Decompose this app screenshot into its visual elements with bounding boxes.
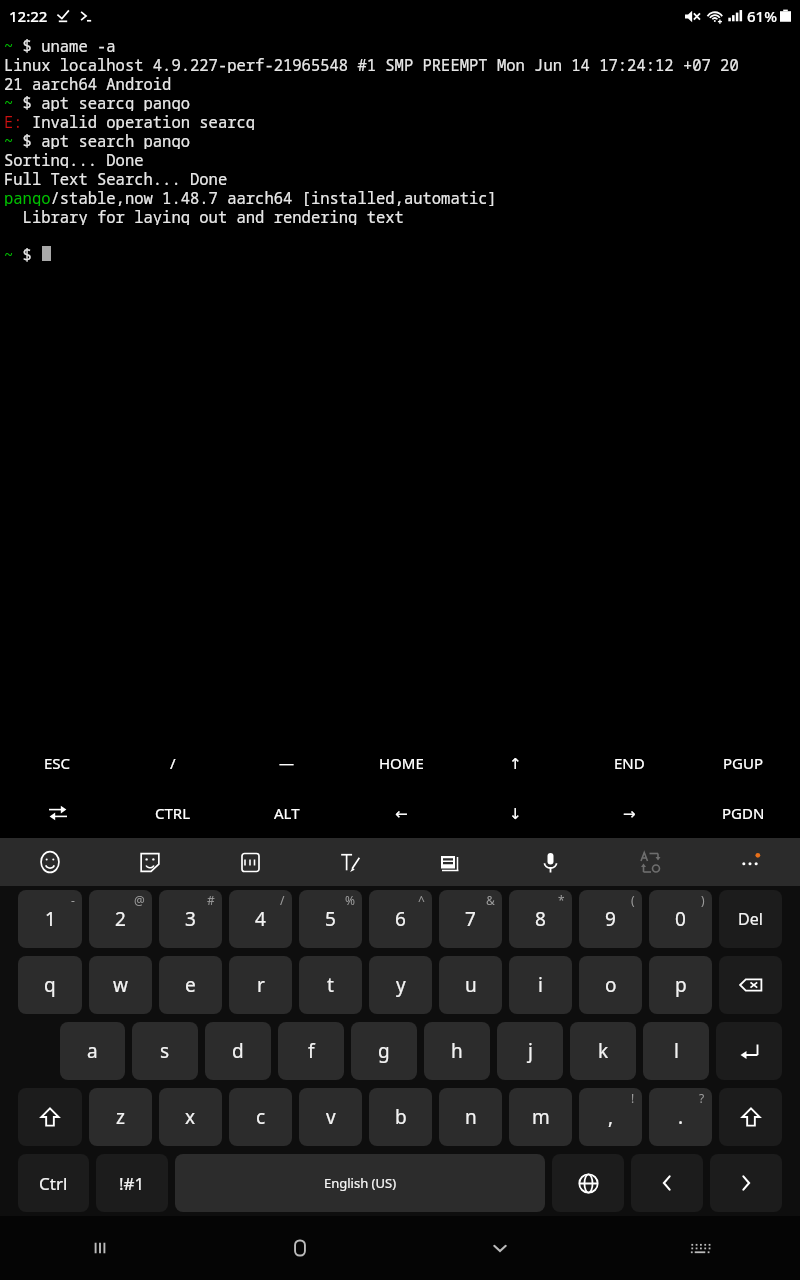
button[interactable]: h xyxy=(424,1022,490,1080)
staticText: Full Text Search... Done xyxy=(4,168,228,187)
button[interactable]: 2 xyxy=(89,890,152,948)
staticText: m xyxy=(532,1104,550,1130)
button[interactable]: Emoji xyxy=(0,838,100,886)
button[interactable]: , xyxy=(579,1088,642,1146)
button[interactable]: END xyxy=(572,738,686,788)
button[interactable]: Shift xyxy=(18,1088,82,1146)
staticText: Linux localhost 4.9.227-perf-21965548 #1… xyxy=(4,54,739,73)
button[interactable]: Shift xyxy=(719,1088,782,1146)
button[interactable]: o xyxy=(579,956,642,1014)
button[interactable]: z xyxy=(89,1088,152,1146)
staticText: * xyxy=(558,892,565,908)
button[interactable]: Tab xyxy=(0,788,115,838)
button[interactable]: / xyxy=(115,738,230,788)
button[interactable]: ← xyxy=(344,788,458,838)
button[interactable]: English (US) xyxy=(175,1154,545,1212)
button[interactable]: . xyxy=(649,1088,712,1146)
staticText: 7 xyxy=(465,906,476,932)
button[interactable]: !#1 xyxy=(96,1154,168,1212)
staticText: ~ $ uname -a xyxy=(4,35,116,54)
button[interactable]: ALT xyxy=(230,788,344,838)
staticText: ^ xyxy=(418,892,425,908)
button[interactable]: y xyxy=(369,956,432,1014)
button[interactable]: x xyxy=(159,1088,222,1146)
button[interactable]: q xyxy=(18,956,82,1014)
button[interactable]: a xyxy=(60,1022,125,1080)
button[interactable]: 6 xyxy=(369,890,432,948)
button[interactable]: Previous xyxy=(631,1154,703,1212)
button[interactable]: p xyxy=(649,956,712,1014)
button[interactable]: Enter xyxy=(716,1022,782,1080)
button[interactable]: 1 xyxy=(18,890,82,948)
button[interactable]: Ctrl xyxy=(18,1154,89,1212)
button[interactable]: Clipboard xyxy=(400,838,500,886)
staticText: r xyxy=(257,972,265,998)
staticText: pango/stable,now 1.48.7 aarch64 [install… xyxy=(4,187,497,206)
button[interactable]: l xyxy=(643,1022,709,1080)
button[interactable]: b xyxy=(369,1088,432,1146)
button[interactable]: j xyxy=(497,1022,563,1080)
button[interactable]: f xyxy=(278,1022,344,1080)
button[interactable]: ↓ xyxy=(458,788,572,838)
button[interactable]: r xyxy=(229,956,292,1014)
staticText: 1 xyxy=(45,906,56,932)
button[interactable]: ESC xyxy=(0,738,115,788)
button[interactable]: Backspace xyxy=(719,956,782,1014)
button[interactable]: 9 xyxy=(579,890,642,948)
button[interactable]: k xyxy=(570,1022,636,1080)
button[interactable]: PGDN xyxy=(686,788,800,838)
button[interactable]: t xyxy=(299,956,362,1014)
button[interactable]: Hide keyboard xyxy=(600,1216,800,1280)
button[interactable]: → xyxy=(572,788,686,838)
staticText: ~ $ xyxy=(4,244,42,263)
staticText: ( xyxy=(631,892,635,908)
button[interactable]: 7 xyxy=(439,890,502,948)
button[interactable]: c xyxy=(229,1088,292,1146)
staticText: w xyxy=(113,972,128,998)
staticText: k xyxy=(598,1038,609,1064)
staticText: Library for laying out and rendering tex… xyxy=(4,206,404,225)
button[interactable]: Stickers xyxy=(100,838,200,886)
button[interactable]: CTRL xyxy=(115,788,230,838)
button[interactable]: Change language xyxy=(552,1154,624,1212)
button[interactable]: 3 xyxy=(159,890,222,948)
staticText: 3 xyxy=(185,906,196,932)
button[interactable]: n xyxy=(439,1088,502,1146)
button[interactable]: Recents xyxy=(0,1216,200,1280)
staticText: / xyxy=(280,892,285,908)
button[interactable]: 5 xyxy=(299,890,362,948)
staticText: Ctrl xyxy=(39,1172,68,1195)
button[interactable]: HOME xyxy=(344,738,458,788)
staticText: ↓ xyxy=(509,805,522,822)
button[interactable]: u xyxy=(439,956,502,1014)
button[interactable]: Back xyxy=(400,1216,600,1280)
button[interactable]: ↑ xyxy=(458,738,572,788)
button[interactable]: Handwriting xyxy=(300,838,400,886)
button[interactable]: Voice input xyxy=(500,838,600,886)
button[interactable]: d xyxy=(205,1022,271,1080)
staticText: ~ $ apt searcg pango xyxy=(4,92,191,111)
button[interactable]: s xyxy=(132,1022,198,1080)
button[interactable]: v xyxy=(299,1088,362,1146)
staticText: b xyxy=(395,1104,407,1130)
button[interactable]: PGUP xyxy=(686,738,800,788)
button[interactable]: 8 xyxy=(509,890,572,948)
button[interactable]: 4 xyxy=(229,890,292,948)
button[interactable]: w xyxy=(89,956,152,1014)
button[interactable]: More options xyxy=(700,838,800,886)
button[interactable]: e xyxy=(159,956,222,1014)
staticText: i xyxy=(538,972,543,998)
button[interactable]: Translate xyxy=(600,838,700,886)
button[interactable]: 0 xyxy=(649,890,712,948)
button[interactable]: g xyxy=(351,1022,417,1080)
staticText: 4 xyxy=(255,906,266,932)
staticText: → xyxy=(623,805,636,822)
button[interactable]: Next xyxy=(710,1154,782,1212)
button[interactable]: i xyxy=(509,956,572,1014)
button[interactable]: GIF xyxy=(200,838,300,886)
button[interactable]: — xyxy=(230,738,344,788)
button[interactable]: Home xyxy=(200,1216,400,1280)
staticText: ← xyxy=(395,805,408,822)
button[interactable]: Del xyxy=(719,890,782,948)
button[interactable]: m xyxy=(509,1088,572,1146)
